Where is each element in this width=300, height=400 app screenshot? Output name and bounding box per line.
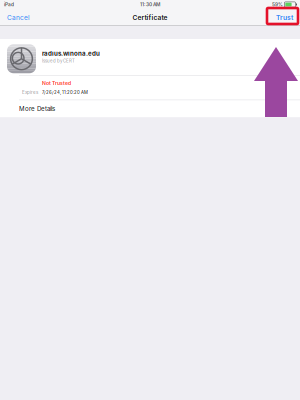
staticText: iPad — [4, 2, 14, 7]
staticText: Issued by CERT — [42, 58, 75, 63]
staticText: 59% — [272, 2, 283, 7]
staticText: Certificate — [132, 13, 167, 22]
staticText: 7/26/24, 11:20:20 AM — [42, 90, 88, 95]
staticText: Trust — [276, 13, 293, 22]
staticText: Cancel — [7, 13, 30, 21]
staticText: Not Trusted — [42, 80, 71, 86]
button[interactable]: More Details — [0, 100, 300, 117]
staticText: 11:30 AM — [140, 2, 160, 7]
staticText: radius.winona.edu — [42, 50, 100, 57]
staticText: Expires — [22, 90, 38, 95]
button[interactable]: Cancel — [0, 9, 37, 25]
button[interactable]: Trust — [269, 9, 300, 26]
staticText: More Details — [19, 105, 55, 112]
